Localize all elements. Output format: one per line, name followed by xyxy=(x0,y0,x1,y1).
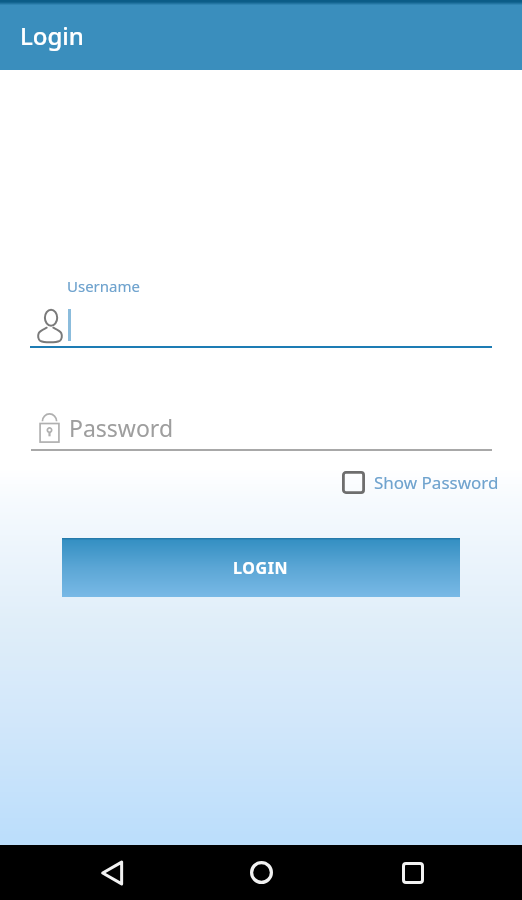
button[interactable]: Password input field xyxy=(31,406,492,451)
staticText: LOGIN xyxy=(233,557,289,579)
staticText: Show Password xyxy=(374,471,499,494)
staticText: Username xyxy=(67,276,140,296)
button[interactable]: Home xyxy=(239,850,284,895)
staticText: Login xyxy=(20,19,84,52)
button[interactable]: Username input field xyxy=(30,272,492,348)
button[interactable]: Recent apps xyxy=(390,850,435,895)
button[interactable]: Back xyxy=(90,850,135,895)
button[interactable]: Show Password xyxy=(342,468,499,496)
staticText: Password xyxy=(69,412,174,443)
button[interactable]: LOGIN xyxy=(62,538,460,597)
